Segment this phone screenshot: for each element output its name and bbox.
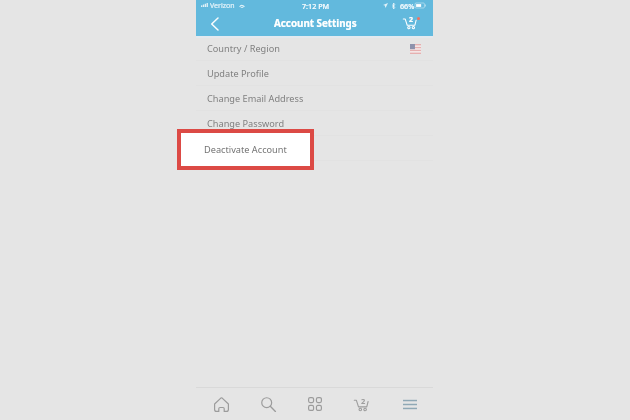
staticText: Change Password — [207, 117, 285, 130]
staticText: 2 — [409, 15, 414, 25]
staticText: 2 — [361, 396, 366, 406]
button[interactable]: Categories — [293, 388, 337, 420]
button[interactable]: Home — [199, 388, 243, 420]
staticText: Verizon — [210, 1, 235, 11]
staticText: Account Settings — [274, 17, 357, 30]
staticText: 66% — [400, 1, 415, 11]
staticText: 7:12 PM — [302, 1, 330, 11]
button[interactable]: Search — [246, 388, 290, 420]
button[interactable]: Deactivate Account — [196, 136, 433, 161]
staticText: Change Email Address — [207, 92, 304, 105]
button[interactable]: Back — [205, 12, 224, 36]
button[interactable]: Menu — [386, 388, 430, 420]
button[interactable]: Change Password — [196, 111, 433, 136]
button[interactable]: Cart — [339, 388, 383, 420]
button[interactable]: Shopping cart — [399, 12, 421, 34]
button[interactable]: Change Email Address — [196, 86, 433, 111]
staticText: Update Profile — [207, 67, 269, 80]
staticText: Country / Region — [207, 42, 280, 55]
staticText: Deactivate Account — [204, 143, 287, 156]
staticText: Deactivate Account — [207, 142, 290, 155]
button[interactable]: Update Profile — [196, 61, 433, 86]
button[interactable]: Country / Region — [196, 36, 433, 61]
